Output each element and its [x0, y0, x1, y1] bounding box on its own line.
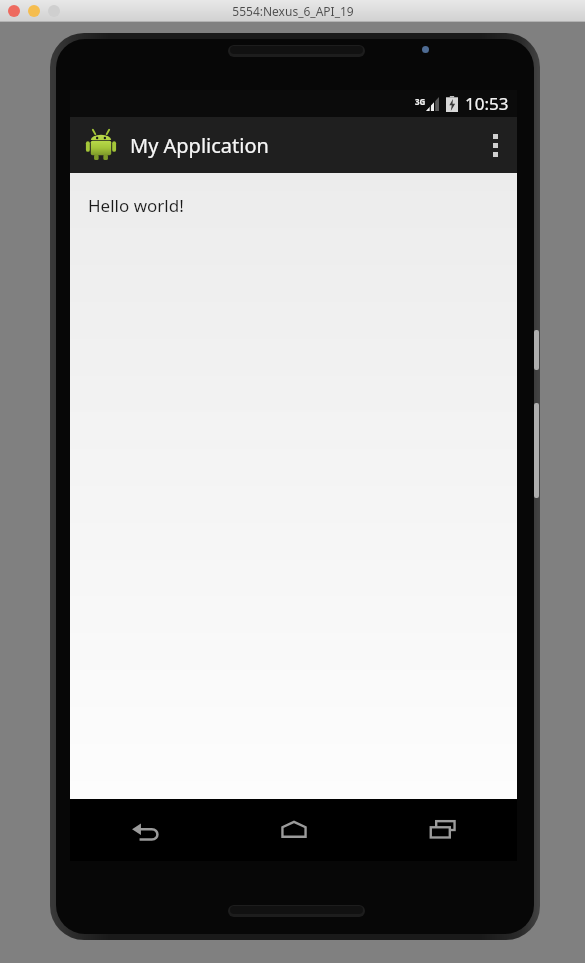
button[interactable]: Recent apps	[368, 799, 517, 861]
button[interactable]: Back	[70, 799, 219, 861]
button[interactable]: Zoom	[48, 5, 60, 17]
staticText: Hello world!	[88, 194, 184, 217]
button[interactable]: Minimise	[28, 5, 40, 17]
staticText: 3G	[415, 96, 426, 107]
button[interactable]: Home	[219, 799, 368, 861]
button[interactable]: Power	[534, 330, 539, 370]
staticText: 5554:Nexus_6_API_19	[232, 3, 354, 19]
staticText: 10:53	[465, 92, 509, 115]
button[interactable]: My Application	[84, 128, 269, 162]
staticText: My Application	[130, 132, 269, 159]
button[interactable]: More options	[473, 117, 517, 173]
button[interactable]: Close	[8, 5, 20, 17]
button[interactable]: Volume	[534, 403, 539, 498]
